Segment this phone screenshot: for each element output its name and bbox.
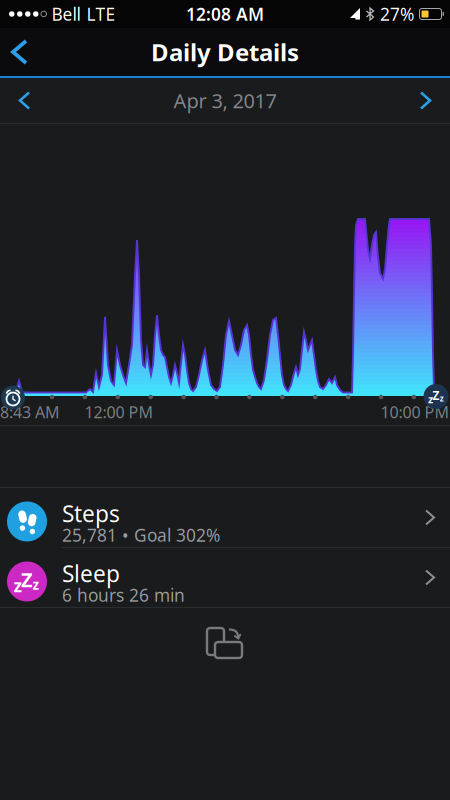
staticText: LTE — [86, 2, 115, 25]
staticText: Sleep — [62, 558, 120, 588]
staticText: z — [440, 393, 444, 404]
staticText: 12:08 AM — [186, 2, 264, 25]
staticText: 12:00 PM — [84, 401, 153, 423]
staticText: z — [32, 576, 39, 593]
staticText: Apr 3, 2017 — [173, 87, 276, 114]
staticText: Z — [21, 566, 33, 593]
button[interactable]: Next day — [421, 78, 450, 122]
staticText: 10:00 PM — [380, 401, 449, 423]
button[interactable]: Rotate to landscape — [205, 608, 245, 660]
staticText: Bell — [51, 2, 80, 25]
staticText: Steps — [62, 498, 120, 528]
staticText: 25,781 • Goal 302% — [62, 523, 220, 546]
button[interactable]: Steps — [0, 488, 450, 547]
button[interactable]: Previous day — [0, 78, 29, 122]
staticText: Z — [432, 387, 439, 403]
staticText: 8:43 AM — [0, 401, 60, 423]
button[interactable]: z — [0, 548, 450, 607]
staticText: 6 hours 26 min — [62, 583, 185, 606]
staticText: 27% — [380, 2, 414, 25]
button[interactable]: Back — [0, 29, 26, 75]
staticText: Daily Details — [151, 36, 299, 68]
staticText: z — [13, 574, 22, 597]
staticText: z — [428, 392, 433, 406]
